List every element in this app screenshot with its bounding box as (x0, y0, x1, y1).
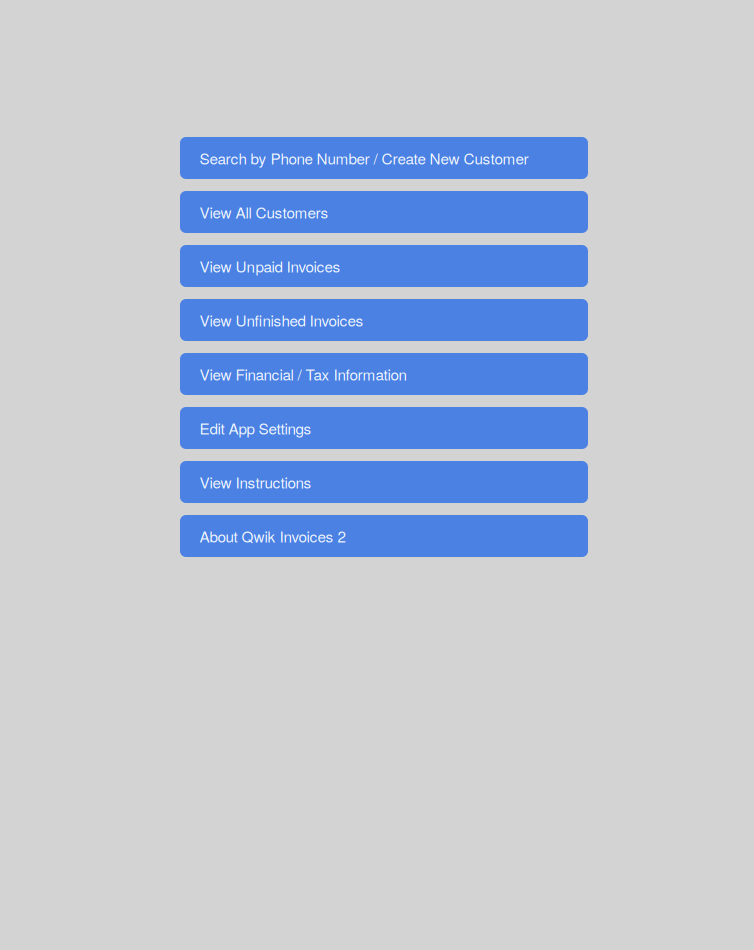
button[interactable]: View Financial / Tax Information (180, 353, 588, 395)
button[interactable]: View All Customers (180, 191, 588, 233)
staticText: View Financial / Tax Information (199, 363, 406, 385)
staticText: View All Customers (199, 201, 328, 223)
staticText: View Unfinished Invoices (199, 309, 363, 331)
button[interactable]: Edit App Settings (180, 407, 588, 449)
staticText: View Unpaid Invoices (199, 255, 340, 277)
button[interactable]: View Unfinished Invoices (180, 299, 588, 341)
staticText: Search by Phone Number / Create New Cust… (199, 147, 528, 169)
staticText: View Instructions (199, 471, 311, 493)
button[interactable]: View Unpaid Invoices (180, 245, 588, 287)
button[interactable]: Search by Phone Number / Create New Cust… (180, 137, 588, 179)
button[interactable]: View Instructions (180, 461, 588, 503)
staticText: Edit App Settings (199, 417, 311, 439)
button[interactable]: About Qwik Invoices 2 (180, 515, 588, 557)
staticText: About Qwik Invoices 2 (199, 525, 345, 547)
